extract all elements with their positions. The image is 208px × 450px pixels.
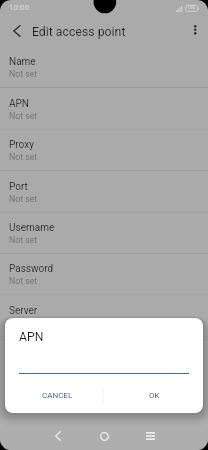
staticText: Username [9,222,55,234]
button[interactable]: CANCEL [12,383,102,407]
staticText: Port [9,181,28,193]
staticText: Not set [9,318,38,328]
staticText: Not set [9,276,38,286]
staticText: Not set [9,69,38,79]
staticText: Not set [9,152,38,162]
button[interactable]: Proxy [0,130,208,171]
button[interactable]: Home [90,422,118,450]
staticText: Not set [9,111,38,121]
staticText: Name [9,56,36,68]
button[interactable]: More options [182,18,207,43]
staticText: 100 [187,5,196,11]
button[interactable]: Password [0,254,208,295]
staticText: 10:00 [9,3,29,12]
staticText: Server [9,305,38,317]
button[interactable]: Server [0,296,208,337]
button[interactable]: APN [0,89,208,130]
button[interactable]: Back [44,422,72,450]
staticText: Proxy [9,139,34,151]
staticText: Password [9,263,54,275]
button[interactable]: Username [0,213,208,254]
button[interactable]: Port [0,172,208,213]
button[interactable]: Navigate up [4,18,29,43]
button[interactable]: Name [0,47,208,88]
staticText: APN [19,330,44,344]
staticText: CANCEL [42,391,73,400]
staticText: Not set [9,235,38,245]
button[interactable]: Recent apps [136,422,164,450]
button[interactable]: OK [109,383,199,407]
staticText: Edit access point [32,25,126,39]
staticText: Not set [9,194,38,204]
staticText: OK [149,391,160,400]
staticText: APN [9,98,29,110]
